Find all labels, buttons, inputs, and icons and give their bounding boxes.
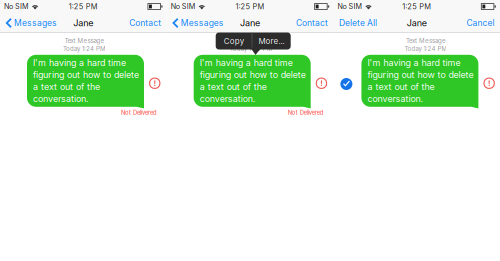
button[interactable]: Messages (172, 15, 224, 31)
staticText: Text Message (64, 37, 104, 44)
button[interactable]: Copy (216, 32, 252, 49)
staticText: More... (258, 36, 284, 46)
button[interactable]: Selected (338, 76, 354, 92)
staticText: Today 1:24 PM (230, 45, 273, 52)
staticText: I'm having a hard time figuring out how … (200, 57, 306, 104)
staticText: Text Message (231, 37, 271, 44)
staticText: Today 1:24 PM (63, 45, 106, 52)
button[interactable]: Message not delivered (314, 75, 329, 91)
staticText: No SIM (337, 2, 362, 11)
staticText: No SIM (171, 2, 196, 11)
button[interactable]: Messages (5, 15, 57, 31)
staticText: 1:25 PM (402, 2, 431, 11)
staticText: Messages (14, 18, 57, 28)
staticText: 1:25 PM (69, 2, 98, 11)
staticText: Today 1:24 PM (404, 45, 447, 52)
staticText: Contact (296, 18, 328, 28)
staticText: Not Delivered (121, 109, 157, 116)
staticText: No SIM (4, 2, 29, 11)
staticText: Cancel (467, 18, 495, 28)
button[interactable]: Cancel (467, 15, 495, 31)
button[interactable]: Contact (296, 15, 328, 31)
staticText: 1:25 PM (235, 2, 264, 11)
button[interactable]: More... (252, 32, 291, 49)
staticText: Jane (73, 17, 93, 28)
button[interactable]: Delete All (339, 15, 377, 31)
staticText: I'm having a hard time figuring out how … (33, 57, 139, 104)
staticText: Contact (129, 18, 161, 28)
staticText: I'm having a hard time figuring out how … (367, 57, 473, 104)
staticText: Copy (224, 36, 244, 46)
button[interactable]: Message not delivered (147, 75, 162, 91)
staticText: Jane (407, 17, 427, 28)
staticText: Not Delivered (288, 109, 324, 116)
button[interactable]: Contact (129, 15, 161, 31)
staticText: Jane (240, 17, 260, 28)
staticText: Delete All (339, 18, 377, 28)
staticText: Messages (181, 18, 224, 28)
button[interactable]: Message not delivered (481, 75, 497, 91)
staticText: Text Message (406, 37, 446, 44)
